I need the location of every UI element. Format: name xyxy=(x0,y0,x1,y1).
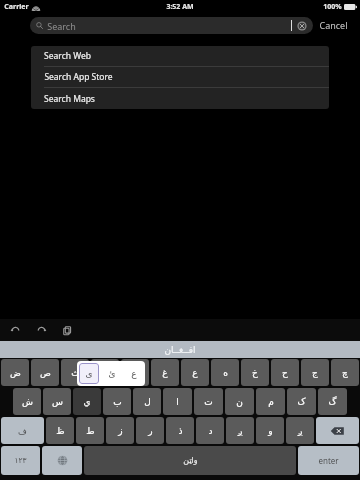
staticText: ص xyxy=(40,368,51,378)
staticText: Search xyxy=(47,20,76,32)
button[interactable]: Search App Store xyxy=(31,67,329,88)
button[interactable]: ل xyxy=(133,388,161,415)
staticText: Cancel xyxy=(319,19,348,31)
staticText: ر xyxy=(148,426,153,436)
button[interactable]: و xyxy=(256,417,284,444)
staticText: ن xyxy=(236,397,243,407)
button[interactable]: غ xyxy=(151,359,179,386)
button[interactable]: Search xyxy=(30,17,313,34)
button[interactable]: Cancel xyxy=(313,16,354,34)
staticText: 100% xyxy=(323,2,342,12)
button[interactable]: ع xyxy=(123,363,145,384)
button[interactable]: ف xyxy=(1,417,44,444)
staticText: م xyxy=(268,397,274,407)
staticText: ع xyxy=(192,368,198,378)
staticText: ى xyxy=(85,369,93,379)
button[interactable]: د xyxy=(196,417,224,444)
staticText: ل xyxy=(144,397,151,407)
staticText: ع xyxy=(131,369,137,379)
button[interactable]: ث xyxy=(61,359,89,386)
button[interactable]: ذ xyxy=(166,417,194,444)
button[interactable]: ږ xyxy=(286,417,314,444)
staticText: Carrier xyxy=(4,2,29,12)
button[interactable]: ص xyxy=(31,359,59,386)
staticText: ږ xyxy=(298,426,303,436)
staticText: و xyxy=(268,426,273,436)
staticText: افــغــان xyxy=(164,345,196,355)
button[interactable]: Search Maps xyxy=(31,88,329,109)
staticText: Search Maps xyxy=(44,93,95,105)
staticText: ف xyxy=(18,426,27,436)
button[interactable]: Search Web xyxy=(31,46,329,67)
staticText: ئ xyxy=(108,369,116,379)
button[interactable]: ئ xyxy=(101,363,123,384)
button[interactable]: ش xyxy=(13,388,41,415)
staticText: خ xyxy=(252,368,258,378)
button[interactable]: س xyxy=(43,388,71,415)
staticText: Search App Store xyxy=(44,71,113,83)
staticText: ش xyxy=(22,397,33,407)
button[interactable]: گ xyxy=(318,388,347,415)
button[interactable]: ز xyxy=(106,417,134,444)
button[interactable]: Backspace xyxy=(316,417,359,444)
button[interactable]: ض xyxy=(1,359,29,386)
staticText: ي xyxy=(83,397,91,407)
staticText: ظ xyxy=(56,426,65,436)
button[interactable]: ن xyxy=(225,388,254,415)
button[interactable]: ح xyxy=(271,359,299,386)
staticText: 3:52 AM xyxy=(166,2,194,12)
staticText: گ xyxy=(328,397,337,407)
button[interactable]: واټن xyxy=(84,446,296,475)
staticText: ض xyxy=(10,368,21,378)
button[interactable]: ا xyxy=(163,388,192,415)
button[interactable]: ک xyxy=(287,388,316,415)
staticText: ب xyxy=(113,397,122,407)
button[interactable]: ب xyxy=(103,388,131,415)
staticText: ط xyxy=(86,426,95,436)
staticText: واټن xyxy=(183,456,198,465)
button[interactable]: Undo xyxy=(6,321,24,339)
button[interactable]: ږ xyxy=(226,417,254,444)
button[interactable]: Switch keyboard xyxy=(42,446,82,475)
button[interactable]: ط xyxy=(76,417,104,444)
staticText: ف xyxy=(130,368,140,378)
staticText: enter xyxy=(318,455,339,466)
staticText: ذ xyxy=(178,426,183,436)
button[interactable]: Copy xyxy=(58,321,76,339)
staticText: چ xyxy=(342,368,348,378)
button[interactable]: ف xyxy=(121,359,149,386)
button[interactable]: ي xyxy=(73,388,101,415)
staticText: س xyxy=(52,397,63,407)
staticText: ږ xyxy=(238,426,243,436)
staticText: ز xyxy=(118,426,123,436)
staticText: ت xyxy=(204,397,213,407)
button[interactable]: ع xyxy=(181,359,209,386)
button[interactable]: enter xyxy=(298,446,359,475)
staticText: Search Web xyxy=(44,50,91,62)
staticText: ا xyxy=(176,397,179,407)
button[interactable]: Clear text xyxy=(296,20,307,31)
button[interactable]: ت xyxy=(194,388,223,415)
button[interactable]: ج xyxy=(301,359,329,386)
staticText: ۱۲۳ xyxy=(14,456,27,465)
button[interactable]: خ xyxy=(241,359,269,386)
button[interactable]: ۱۲۳ xyxy=(1,446,40,475)
staticText: ث xyxy=(71,368,80,378)
button[interactable]: چ xyxy=(331,359,359,386)
button[interactable]: ه xyxy=(211,359,239,386)
staticText: ه xyxy=(223,368,228,378)
button[interactable]: ر xyxy=(136,417,164,444)
staticText: ک xyxy=(297,397,306,407)
staticText: ح xyxy=(282,368,288,378)
button[interactable]: ق xyxy=(91,359,119,386)
staticText: غ xyxy=(162,368,168,378)
staticText: د xyxy=(208,426,213,436)
button[interactable]: ى xyxy=(79,363,99,384)
button[interactable]: ظ xyxy=(46,417,74,444)
button[interactable]: م xyxy=(256,388,285,415)
staticText: ج xyxy=(312,368,318,378)
button[interactable]: Redo xyxy=(32,321,50,339)
